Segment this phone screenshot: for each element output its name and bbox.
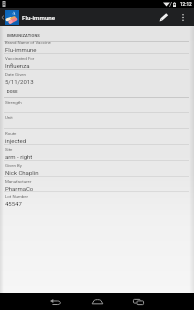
staticText: injected [5, 137, 27, 144]
staticText: Flu-immune [22, 14, 56, 21]
staticText: Strength [5, 100, 22, 105]
button[interactable]: Navigate up [0, 8, 56, 26]
staticText: Nick Chaplin [5, 169, 39, 176]
button[interactable]: Site [0, 144, 194, 160]
staticText: Route [5, 131, 17, 136]
button[interactable]: Home [80, 293, 115, 310]
staticText: Site [5, 147, 13, 152]
other: Navigate up [0, 14, 5, 21]
staticText: Vaccinated For [5, 56, 35, 61]
button[interactable]: Manufacturer [0, 176, 194, 192]
button[interactable]: Lot Number [0, 191, 194, 207]
button[interactable]: Back [38, 293, 73, 310]
button[interactable]: Given By [0, 160, 194, 176]
staticText [5, 106, 7, 113]
staticText: Unit [5, 115, 13, 120]
button[interactable]: More options [175, 8, 191, 26]
staticText: Influenza [5, 62, 30, 69]
staticText: Date Given [5, 72, 27, 77]
staticText: 12:12 [180, 2, 192, 7]
staticText: IMMUNIZATIONS [7, 33, 40, 38]
staticText: 45547 [5, 200, 22, 207]
staticText: Brand Name of Vaccine [5, 40, 51, 45]
staticText: Lot Number [5, 194, 29, 199]
button[interactable]: Date Given [0, 69, 194, 85]
button[interactable]: Edit [152, 8, 175, 26]
button[interactable]: Vaccinated For [0, 53, 194, 69]
staticText: Given By [5, 163, 22, 168]
staticText: Manufacturer [5, 179, 32, 184]
staticText: DOSE [7, 89, 18, 94]
button[interactable]: Unit [0, 112, 194, 128]
staticText: Flu-immune [5, 46, 37, 53]
button[interactable]: Brand Name of Vaccine [0, 37, 194, 53]
button[interactable]: Strength [0, 97, 194, 113]
button[interactable]: Recent apps [121, 293, 156, 310]
staticText: PharmaCo [5, 185, 34, 192]
button[interactable]: Route [0, 128, 194, 144]
staticText: arm - right [5, 153, 33, 160]
staticText: 5/11/2013 [5, 78, 34, 85]
